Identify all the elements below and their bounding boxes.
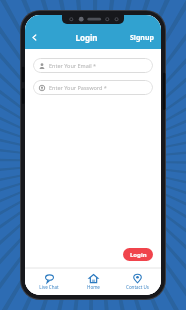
button[interactable]: Home [73,268,113,295]
staticText: Contact Us [126,284,149,290]
staticText: Live Chat [39,284,59,290]
staticText: Home [87,284,100,290]
button[interactable]: Live Chat [29,268,69,295]
button[interactable]: Enter Your Email * [33,58,153,73]
button[interactable]: Enter Your Password * [33,80,153,95]
staticText: Login [130,251,147,259]
button[interactable]: Back [25,26,43,49]
button[interactable]: Signup [130,26,161,49]
button[interactable]: Login [123,248,153,261]
staticText: Enter Your Email * [49,62,97,69]
button[interactable]: Contact Us [117,268,157,295]
staticText: Enter Your Password * [49,84,107,91]
staticText: Signup [130,33,154,43]
staticText: Login [75,32,98,43]
